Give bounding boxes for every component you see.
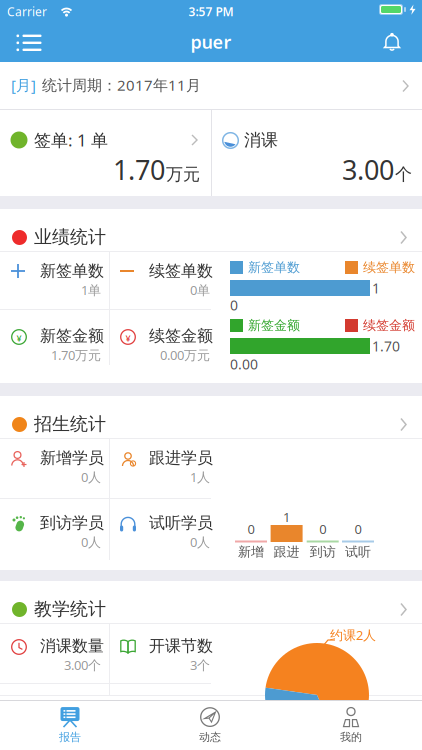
button[interactable]: Notifications [370,22,414,62]
staticText: 0.00 [230,354,258,374]
staticText: 续签单数 [149,261,213,281]
button[interactable]: 消课 [212,110,422,196]
staticText: 约课2人 [330,626,376,644]
staticText: 新签单数 [40,261,104,281]
staticText: 3.00个 [64,656,101,674]
staticText: 跟进学员 [149,448,213,468]
staticText: 0人 [190,533,210,551]
staticText: 1 [372,278,380,298]
staticText: ¥ [16,332,21,344]
staticText: 动态 [199,730,221,744]
staticText: 签单: 1 单 [34,128,108,152]
staticText: 新增学员 [40,448,104,468]
staticText: 报告 [59,730,81,744]
button[interactable]: 我的 [280,701,422,750]
staticText: 统计周期：2017年11月 [42,75,201,95]
staticText: 跟进 [274,544,300,560]
staticText: 到访 [310,544,336,560]
staticText: 万元 [166,164,200,185]
staticText: 新签金额 [40,326,104,346]
button[interactable]: [月] [0,62,422,110]
staticText: 0.00万元 [160,346,210,364]
button[interactable]: 签单: 1 单 [0,110,211,196]
staticText: 1人 [190,468,210,486]
staticText: 教学统计 [34,598,106,620]
button[interactable]: 动态 [140,701,280,750]
staticText: 3.00 [342,151,394,188]
staticText: 0单 [190,281,210,299]
staticText: 业绩统计 [34,226,106,248]
staticText: 新签金额 [248,317,300,334]
staticText: 新增 [238,544,264,560]
button[interactable]: 教学统计 [0,581,422,624]
staticText: 个 [395,164,412,185]
staticText: 0 [354,520,361,538]
staticText: 试听 [345,544,371,560]
staticText: ¥ [125,332,130,344]
staticText: 续签单数 [363,259,415,276]
button[interactable]: 业绩统计 [0,209,422,252]
staticText: 到访学员 [40,513,104,533]
staticText: 1单 [81,281,101,299]
staticText: 0 [247,520,254,538]
staticText: 消课 [244,129,278,151]
staticText: 续签金额 [363,317,415,334]
staticText: 1 [283,508,290,526]
staticText: 0 [230,295,238,315]
staticText: 招生统计 [34,413,106,435]
button[interactable]: 报告 [0,701,140,750]
staticText: 1.70 [372,336,400,356]
staticText: 开课节数 [149,636,213,656]
staticText: [月] [11,75,36,95]
staticText: 1.70万元 [51,346,101,364]
staticText: 0人 [81,533,101,551]
staticText: Carrier [7,3,47,20]
staticText: 0 [319,520,326,538]
staticText: 0人 [81,468,101,486]
staticText: 续签金额 [149,326,213,346]
staticText: 我的 [340,730,362,744]
staticText: 消课数量 [40,636,104,656]
staticText: 3个 [190,656,210,674]
staticText: 1.70 [113,151,165,188]
staticText: puer [190,29,231,54]
button[interactable]: 招生统计 [0,396,422,439]
staticText: 试听学员 [149,513,213,533]
staticText: 3:57 PM [188,3,233,20]
staticText: 新签单数 [248,259,300,276]
button[interactable]: Menu [7,23,51,63]
